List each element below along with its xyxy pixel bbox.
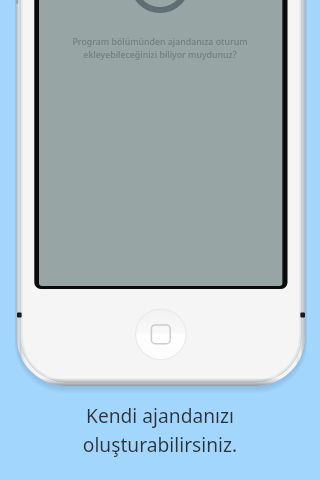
button[interactable]: Program bölümünden ajandanıza oturum ekl…: [40, 36, 280, 60]
staticText: Kendi ajandanızı oluşturabilirsiniz.: [0, 402, 320, 457]
staticText: Program bölümünden ajandanıza oturum ekl…: [40, 36, 280, 60]
button[interactable]: Home: [135, 309, 186, 360]
